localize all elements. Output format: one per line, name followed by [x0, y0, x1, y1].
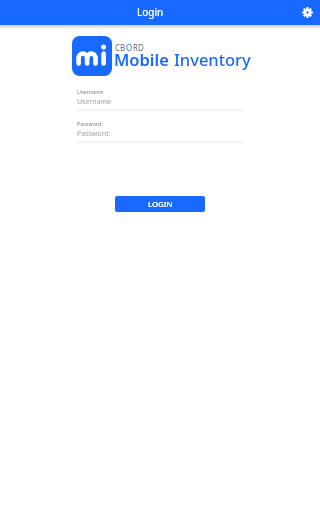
staticText: Username [77, 88, 104, 95]
button[interactable]: Settings [296, 1, 318, 23]
staticText: Mobile [114, 48, 174, 70]
staticText: RD [133, 42, 144, 53]
button[interactable]: Password: [77, 120, 243, 144]
staticText: Password: [77, 120, 103, 127]
staticText: CB [115, 42, 126, 53]
staticText: Username [77, 97, 112, 107]
staticText: Inventory [174, 48, 251, 70]
staticText: LOGIN [148, 199, 173, 210]
button[interactable]: LOGIN [115, 196, 205, 212]
staticText: O [126, 42, 133, 53]
button[interactable]: Username [77, 88, 243, 112]
staticText: Login [137, 5, 164, 19]
staticText: Password: [77, 129, 111, 139]
